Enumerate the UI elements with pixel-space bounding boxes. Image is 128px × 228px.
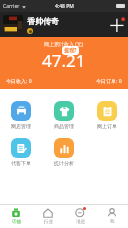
staticText: 今日收入: 0 [6,78,32,85]
button[interactable]: 统计分析 [42,136,85,168]
staticText: 消息 [76,219,85,225]
button[interactable]: 代客下单 [0,136,42,168]
staticText: 店铺 [12,219,21,225]
staticText: 47.21 [42,49,86,72]
staticText: 4:48 PM [55,3,74,10]
staticText: 代客下单 [11,160,31,166]
staticText: 香帅传奇 [27,16,59,26]
button[interactable]: 提现? [62,46,79,55]
staticText: 网店管理 [11,123,31,129]
staticText: 商品管理 [54,123,74,129]
button[interactable]: 店铺 [0,205,32,228]
button[interactable]: 消息 [64,205,96,228]
staticText: 提现? [64,47,77,54]
staticText: 今日订单: 0 [96,78,122,85]
staticText: 网上订单 [97,123,117,129]
button[interactable]: Shop avatar [3,15,23,35]
button[interactable]: 网上订单 [85,99,128,131]
staticText: 网上累计收入 (元) [44,41,84,48]
button[interactable]: Add [107,14,128,36]
staticText: 行业 [44,219,53,225]
button[interactable]: 我 [96,205,128,228]
staticText: 我 [110,219,115,225]
button[interactable]: 网店管理 [0,99,42,131]
staticText: Carrier [3,3,20,10]
button[interactable]: 商品管理 [42,99,85,131]
button[interactable]: 行业 [32,205,64,228]
staticText: 统计分析 [54,160,74,166]
